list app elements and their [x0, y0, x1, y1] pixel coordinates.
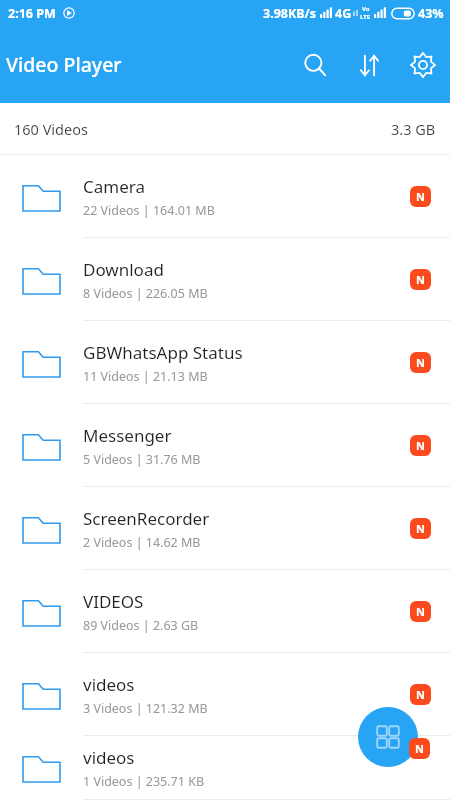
- staticText: 1 Videos | 235.71 KB: [83, 773, 205, 790]
- staticText: 43%: [418, 5, 444, 22]
- staticText: 2 Videos | 14.62 MB: [83, 534, 201, 551]
- staticText: ScreenRecorder: [83, 507, 210, 530]
- staticText: videos: [83, 673, 135, 696]
- staticText: GBWhatsApp Status: [83, 341, 243, 364]
- staticText: 89 Videos | 2.63 GB: [83, 617, 199, 634]
- staticText: 8 Videos | 226.05 MB: [83, 285, 208, 302]
- staticText: N: [416, 189, 425, 204]
- button[interactable]: Settings: [406, 48, 440, 82]
- button[interactable]: videos: [0, 736, 450, 800]
- staticText: 4G: [335, 5, 352, 22]
- staticText: 3.98KB/s: [263, 5, 317, 22]
- button[interactable]: GBWhatsApp Status: [0, 321, 450, 404]
- staticText: LTE: [360, 13, 371, 21]
- staticText: Download: [83, 258, 164, 281]
- staticText: Messenger: [83, 424, 172, 447]
- staticText: 160 Videos: [14, 119, 88, 139]
- staticText: Video Player: [6, 51, 122, 78]
- button[interactable]: Download: [0, 238, 450, 321]
- button[interactable]: Messenger: [0, 404, 450, 487]
- staticText: N: [416, 521, 425, 536]
- button[interactable]: Camera: [0, 155, 450, 238]
- staticText: N: [416, 355, 425, 370]
- staticText: 22 Videos | 164.01 MB: [83, 202, 215, 219]
- button[interactable]: ScreenRecorder: [0, 487, 450, 570]
- staticText: 2:16 PM: [8, 5, 56, 22]
- staticText: N: [415, 741, 424, 756]
- button[interactable]: videos: [0, 653, 450, 736]
- staticText: Vo: [362, 5, 370, 13]
- staticText: 5 Videos | 31.76 MB: [83, 451, 201, 468]
- staticText: N: [416, 272, 425, 287]
- staticText: N: [416, 687, 425, 702]
- staticText: 11 Videos | 21.13 MB: [83, 368, 208, 385]
- staticText: N: [416, 438, 425, 453]
- staticText: 3.3 GB: [391, 119, 436, 139]
- button[interactable]: Sort: [352, 48, 386, 82]
- button[interactable]: VIDEOS: [0, 570, 450, 653]
- staticText: N: [416, 604, 425, 619]
- staticText: videos: [83, 746, 135, 769]
- button[interactable]: Grid view: [358, 707, 418, 767]
- staticText: VIDEOS: [83, 590, 144, 613]
- staticText: Camera: [83, 175, 145, 198]
- button[interactable]: Search: [298, 48, 332, 82]
- staticText: 3 Videos | 121.32 MB: [83, 700, 208, 717]
